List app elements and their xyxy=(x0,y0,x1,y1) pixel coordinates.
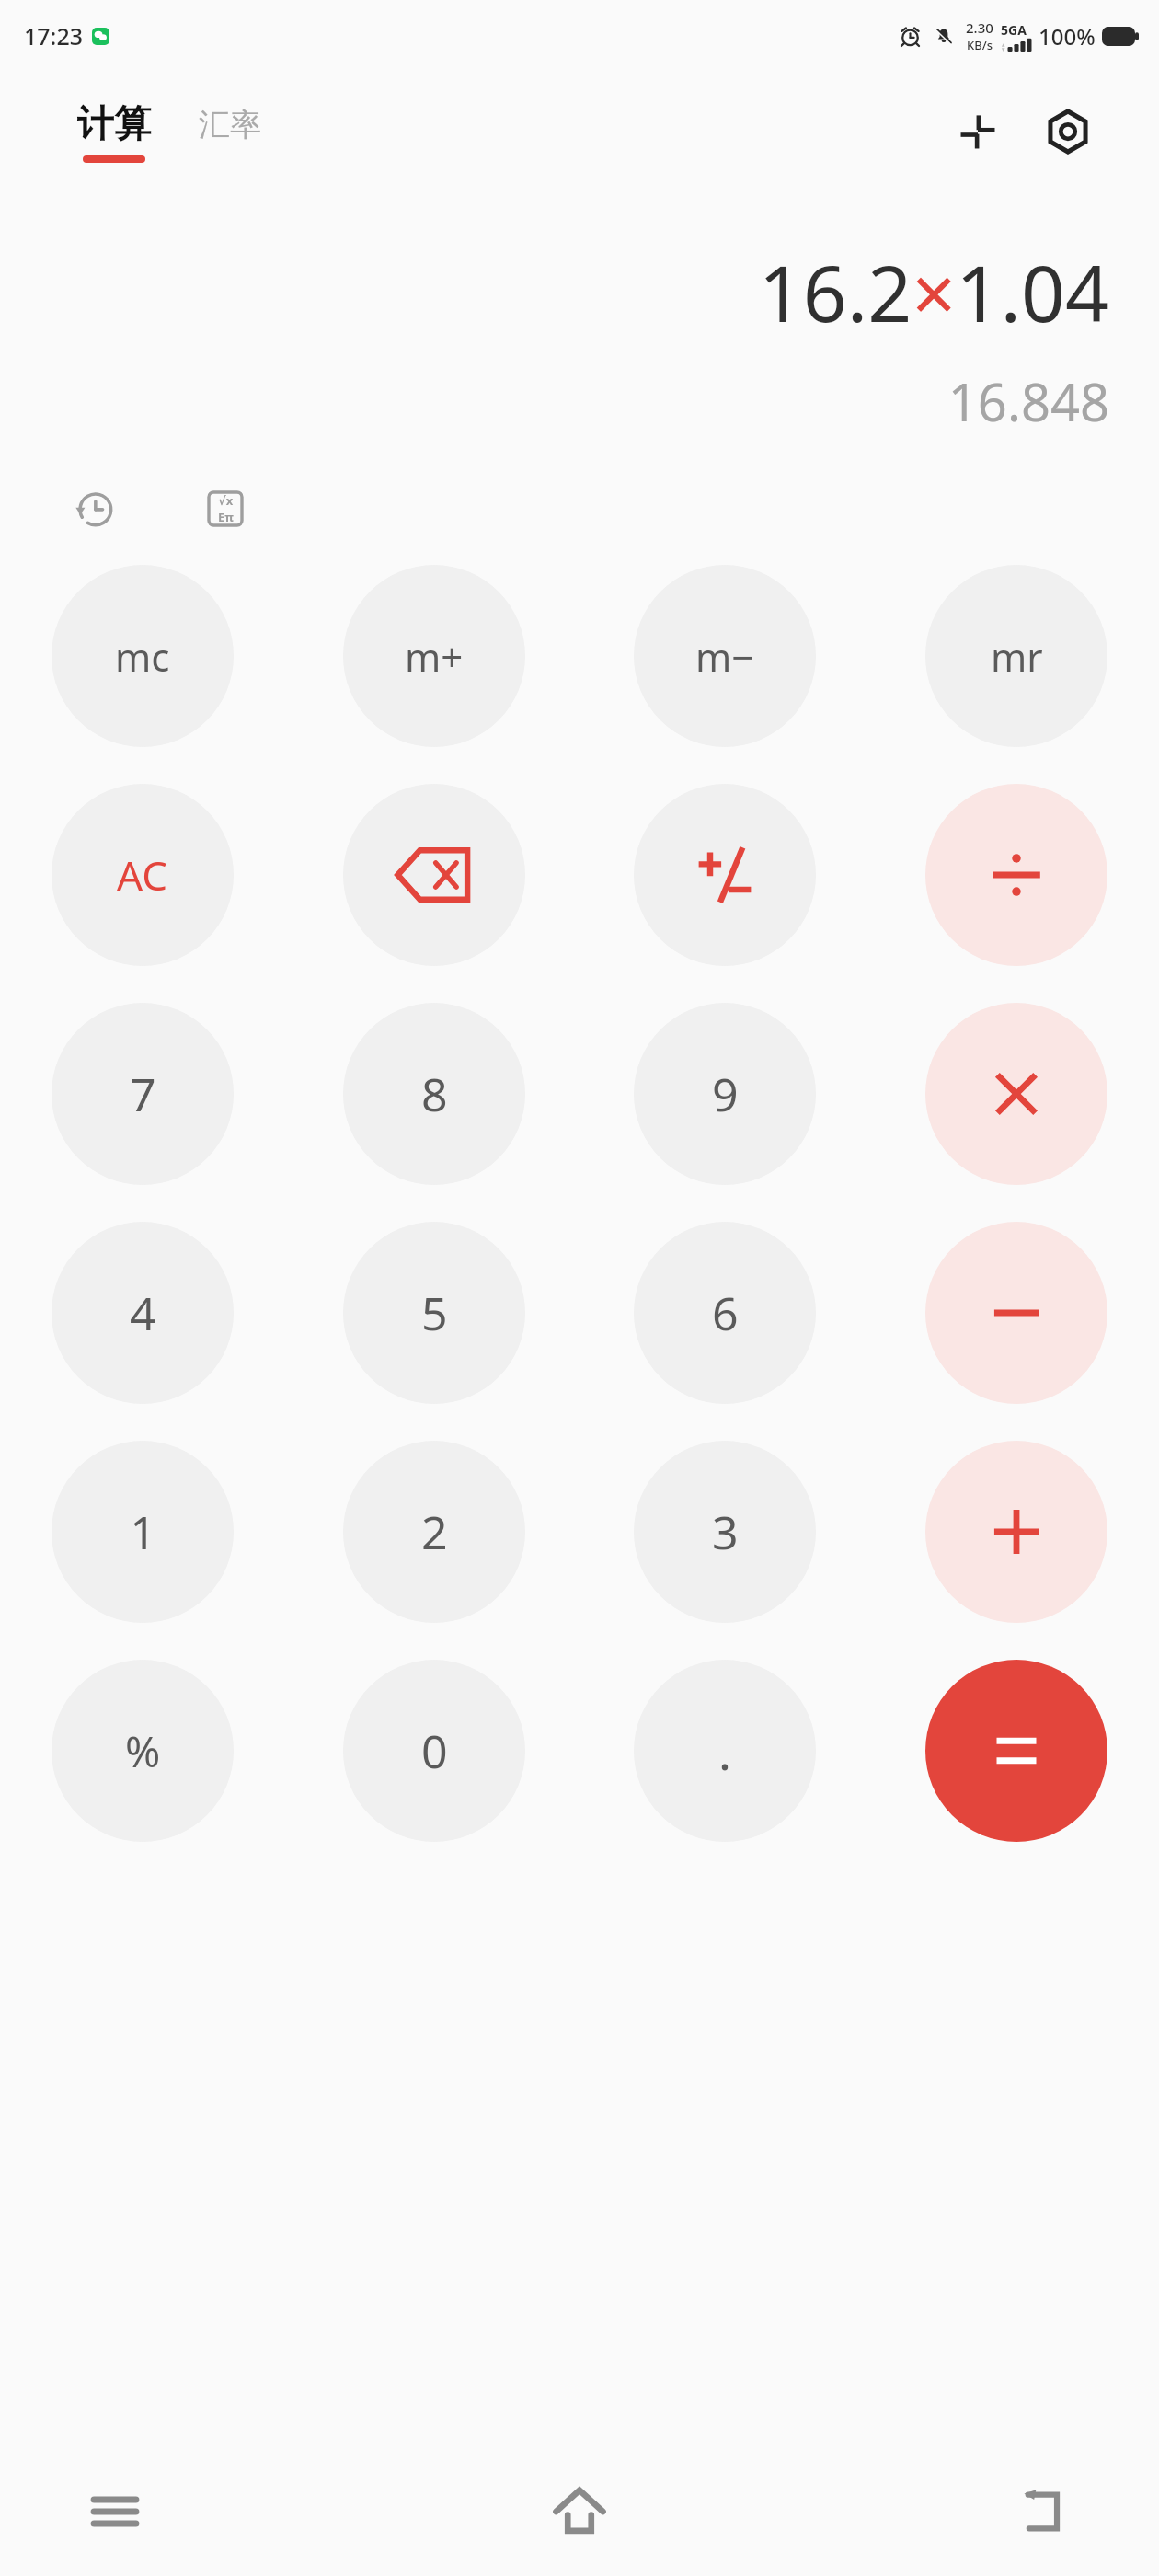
staticText: 1 xyxy=(130,1501,156,1563)
button[interactable]: Recent apps xyxy=(55,2452,175,2571)
button[interactable]: AC xyxy=(52,784,234,966)
button[interactable]: 5 xyxy=(343,1222,525,1404)
button[interactable]: Plus minus xyxy=(634,784,816,966)
button[interactable]: Settings xyxy=(1034,98,1102,166)
staticText: 0 xyxy=(421,1719,448,1782)
staticText: 计算 xyxy=(77,100,151,146)
staticText: 6 xyxy=(712,1282,739,1344)
button[interactable]: Back xyxy=(984,2452,1104,2571)
staticText: 5 xyxy=(421,1282,448,1344)
staticText: m+ xyxy=(405,630,464,683)
button[interactable]: Plus xyxy=(925,1441,1107,1623)
button[interactable]: Equals xyxy=(925,1660,1107,1842)
button[interactable]: 汇率 xyxy=(195,98,265,167)
button[interactable]: 1 xyxy=(52,1441,234,1623)
staticText: 2 xyxy=(421,1501,448,1563)
button[interactable]: Home xyxy=(520,2452,639,2571)
button[interactable]: Scientific mode xyxy=(193,477,258,541)
staticText: 汇率 xyxy=(199,105,261,144)
staticText: KB/s xyxy=(967,37,993,53)
button[interactable]: m+ xyxy=(343,565,525,747)
staticText: m− xyxy=(695,630,754,683)
button[interactable]: 0 xyxy=(343,1660,525,1842)
button[interactable]: 2 xyxy=(343,1441,525,1623)
staticText: 17:23 xyxy=(24,20,84,52)
button[interactable]: 4 xyxy=(52,1222,234,1404)
staticText: 7 xyxy=(130,1063,156,1125)
button[interactable]: mc xyxy=(52,565,234,747)
staticText: 16.2×1.04 xyxy=(758,239,1109,344)
staticText: mr xyxy=(991,630,1043,683)
staticText: 8 xyxy=(421,1063,448,1125)
button[interactable]: 计算 xyxy=(74,100,155,163)
staticText: AC xyxy=(117,847,168,903)
button[interactable]: mr xyxy=(925,565,1107,747)
button[interactable]: % xyxy=(52,1660,234,1842)
staticText: % xyxy=(125,1722,161,1780)
staticText: 5GA xyxy=(1001,21,1027,39)
button[interactable]: Collapse keypad xyxy=(944,98,1012,166)
staticText: Eπ xyxy=(218,509,234,525)
button[interactable]: Divide xyxy=(925,784,1107,966)
staticText: 16.848 xyxy=(947,366,1109,436)
button[interactable]: 8 xyxy=(343,1003,525,1185)
button[interactable]: 7 xyxy=(52,1003,234,1185)
staticText: √x xyxy=(218,492,234,509)
button[interactable]: Minus xyxy=(925,1222,1107,1404)
staticText: 3 xyxy=(712,1501,739,1563)
staticText: mc xyxy=(115,630,170,683)
staticText: 2.30 xyxy=(966,18,993,37)
button[interactable]: 3 xyxy=(634,1441,816,1623)
button[interactable]: Multiply xyxy=(925,1003,1107,1185)
button[interactable]: m− xyxy=(634,565,816,747)
button[interactable]: . xyxy=(634,1660,816,1842)
button[interactable]: 9 xyxy=(634,1003,816,1185)
staticText: 100% xyxy=(1039,21,1096,52)
button[interactable]: 6 xyxy=(634,1222,816,1404)
staticText: 4 xyxy=(130,1282,156,1344)
button[interactable]: History xyxy=(63,477,127,541)
button[interactable]: Backspace xyxy=(343,784,525,966)
staticText: . xyxy=(718,1719,731,1784)
staticText: 9 xyxy=(712,1063,739,1125)
